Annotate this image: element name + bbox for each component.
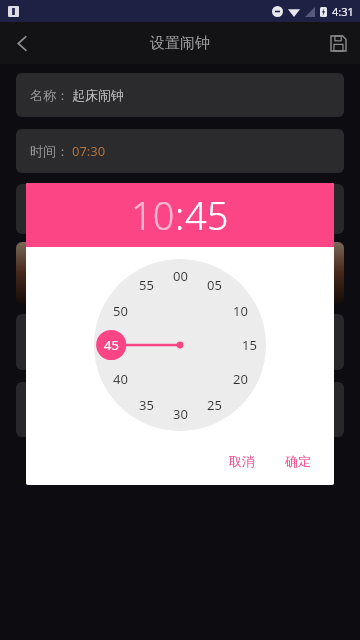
button[interactable]: 15 [236,332,262,358]
button[interactable]: 45 [185,189,229,241]
staticText: 10 [233,302,248,320]
button[interactable]: 05 [201,272,227,298]
button[interactable]: 时间： [16,129,344,173]
button[interactable]: 00 [167,263,193,289]
staticText: : [175,189,185,241]
button[interactable]: 40 [107,366,133,392]
staticText: 07:30 [72,142,106,160]
staticText: 30 [173,405,188,423]
button[interactable]: 50 [107,298,133,324]
staticText: 20 [233,370,248,388]
staticText: 00 [173,267,188,285]
button[interactable] [16,314,344,370]
button[interactable] [16,382,344,437]
staticText: 确定 [285,453,311,469]
button[interactable]: 45 [98,332,124,358]
button[interactable]: 30 [167,401,193,427]
button[interactable]: 35 [133,392,159,418]
button[interactable]: 25 [201,392,227,418]
button[interactable]: 取消 [220,448,264,474]
button[interactable]: 55 [133,272,159,298]
staticText: 25 [207,396,222,414]
button[interactable] [16,242,344,304]
button[interactable] [16,184,344,234]
staticText: 45 [104,336,119,354]
staticText: 名称： [30,87,69,103]
button[interactable]: 20 [227,366,253,392]
button[interactable]: Back [0,22,44,64]
staticText: 设置闹钟 [150,34,210,53]
button[interactable]: Save [316,22,360,64]
staticText: 15 [242,336,257,354]
staticText: 35 [139,396,154,414]
staticText: 50 [113,302,128,320]
staticText: 时间： [30,143,69,159]
button[interactable]: 名称： [16,73,344,117]
staticText: 4:31 [332,4,354,19]
staticText: 起床闹钟 [72,87,124,103]
button[interactable]: 10 [131,189,175,241]
staticText: 40 [113,370,128,388]
button[interactable]: 确定 [276,448,320,474]
staticText: 取消 [229,453,255,469]
staticText: 05 [207,276,222,294]
button[interactable]: 10 [227,298,253,324]
staticText: 55 [139,276,154,294]
